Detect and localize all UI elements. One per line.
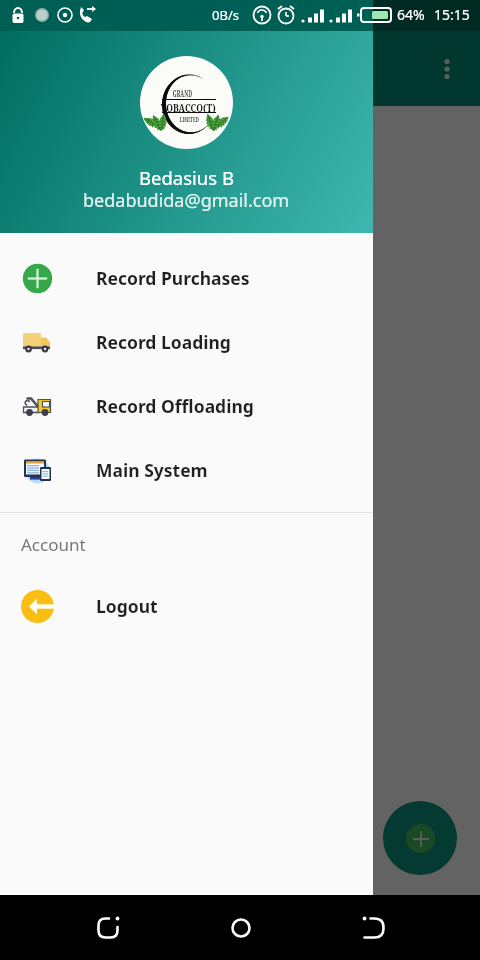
staticText: Bedasius B xyxy=(139,165,234,190)
button[interactable]: More options xyxy=(427,49,467,89)
staticText: Logout xyxy=(96,594,158,618)
button[interactable]: Record Purchases xyxy=(0,246,373,310)
staticText: LIMITED xyxy=(180,114,199,124)
button[interactable]: Record Offloading xyxy=(0,374,373,438)
button[interactable]: Recent apps xyxy=(41,895,174,960)
staticText: 0B/s xyxy=(212,6,239,24)
staticText: Record Offloading xyxy=(96,394,254,418)
button[interactable]: Add xyxy=(383,801,457,875)
button[interactable]: Record Loading xyxy=(0,310,373,374)
button[interactable] xyxy=(0,0,480,895)
staticText: GRAND xyxy=(173,88,192,100)
button[interactable]: Main System xyxy=(0,438,373,502)
staticText: 64% xyxy=(397,5,425,24)
staticText: Record Purchases xyxy=(96,266,250,290)
button[interactable]: Home xyxy=(174,895,307,960)
staticText: Record Loading xyxy=(96,330,231,354)
staticText: TOBACCO(T) xyxy=(161,100,216,115)
staticText: bedabudida@gmail.com xyxy=(83,188,290,213)
staticText: Account xyxy=(21,533,86,556)
staticText: Main System xyxy=(96,458,208,482)
button[interactable]: Back xyxy=(307,895,440,960)
button[interactable]: Logout xyxy=(0,574,373,638)
staticText: 15:15 xyxy=(434,5,470,24)
